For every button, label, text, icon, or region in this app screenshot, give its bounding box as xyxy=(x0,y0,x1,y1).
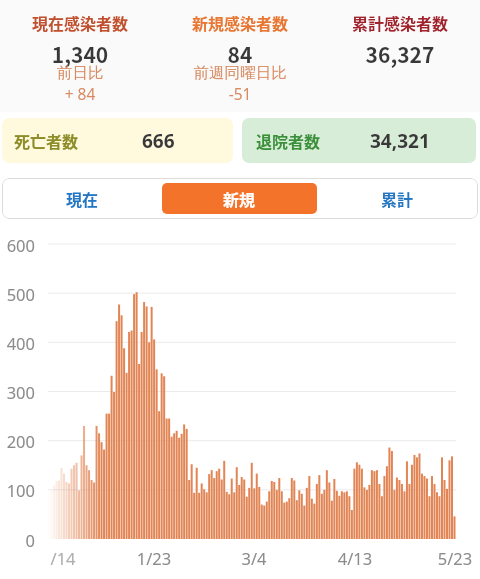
button[interactable]: 累計 xyxy=(317,183,478,214)
button[interactable]: 現在感染者数 xyxy=(0,0,160,112)
staticText: 新規 xyxy=(223,187,256,210)
staticText: 666 xyxy=(142,128,175,154)
staticText: 前日比 xyxy=(0,63,160,83)
staticText: 84 xyxy=(160,39,320,69)
staticText: 現在感染者数 xyxy=(0,11,160,34)
staticText: 500 xyxy=(0,283,35,305)
staticText: 新規感染者数 xyxy=(160,11,320,34)
staticText: 200 xyxy=(0,430,35,452)
button[interactable]: 新規感染者数 xyxy=(160,0,320,112)
button[interactable]: 累計感染者数 xyxy=(320,0,480,112)
staticText: 累計感染者数 xyxy=(320,11,480,34)
staticText: 1/23 xyxy=(114,547,194,569)
staticText: 5/23 xyxy=(415,547,480,569)
staticText: -51 xyxy=(160,83,320,104)
staticText: 死亡者数 xyxy=(14,129,79,152)
staticText: 1,340 xyxy=(0,39,160,69)
staticText: 600 xyxy=(0,234,35,256)
staticText: 累計 xyxy=(381,187,414,210)
button[interactable]: 退院者数 xyxy=(242,118,476,163)
staticText: 退院者数 xyxy=(256,129,321,152)
button[interactable]: 死亡者数 xyxy=(2,118,233,163)
staticText: + 84 xyxy=(0,83,160,104)
staticText: 前週同曜日比 xyxy=(160,63,320,83)
staticText: 3/4 xyxy=(214,547,294,569)
staticText: /14 xyxy=(23,547,103,569)
button[interactable]: 現在 xyxy=(2,183,162,214)
staticText: 36,327 xyxy=(320,39,480,69)
staticText: 4/13 xyxy=(315,547,395,569)
staticText: 0 xyxy=(0,529,35,551)
staticText: 34,321 xyxy=(370,128,430,154)
staticText: 現在 xyxy=(66,187,99,210)
staticText: 100 xyxy=(0,479,35,501)
staticText: 400 xyxy=(0,332,35,354)
staticText: 300 xyxy=(0,381,35,403)
button[interactable]: 新規 xyxy=(162,183,317,214)
